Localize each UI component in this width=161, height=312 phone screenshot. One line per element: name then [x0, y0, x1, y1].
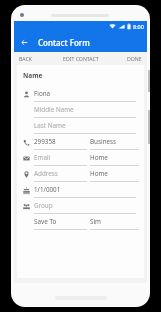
staticText: BACK — [19, 55, 33, 62]
button[interactable]: Address — [17, 166, 144, 182]
staticText: EDIT CONTACT — [63, 55, 99, 62]
staticText: Name — [23, 71, 43, 80]
button[interactable]: 1/1/0001 — [17, 182, 144, 198]
staticText: Home — [90, 169, 108, 178]
staticText: 299358 — [34, 137, 56, 146]
staticText: Sim — [90, 217, 101, 226]
button[interactable]: Fiona — [17, 86, 144, 102]
staticText: 8:00 — [133, 23, 144, 30]
button[interactable]: DONE — [108, 52, 147, 65]
button[interactable]: Email — [17, 150, 144, 166]
staticText: 1/1/0001 — [34, 185, 61, 194]
button[interactable]: EDIT CONTACT — [53, 52, 108, 65]
staticText: Business — [90, 137, 117, 146]
button[interactable]: Back — [18, 36, 30, 48]
staticText: Contact Form — [38, 37, 90, 48]
button[interactable]: 299358 — [17, 134, 144, 150]
staticText: Save To — [34, 217, 57, 226]
staticText: Home — [90, 153, 108, 162]
button[interactable]: Save To — [17, 214, 144, 230]
staticText: Address — [34, 169, 58, 178]
button[interactable]: Last Name — [17, 118, 144, 134]
staticText: Fiona — [34, 89, 51, 98]
staticText: Last Name — [34, 121, 66, 130]
staticText: Group — [34, 201, 53, 210]
staticText: DONE — [127, 55, 142, 62]
button[interactable]: BACK — [14, 52, 53, 65]
button[interactable]: Middle Name — [17, 102, 144, 118]
staticText: Email — [34, 153, 51, 162]
staticText: Middle Name — [34, 105, 74, 114]
button[interactable]: Group — [17, 198, 144, 214]
